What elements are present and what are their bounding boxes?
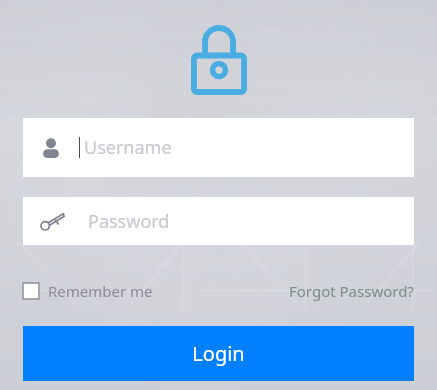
button[interactable]: Username xyxy=(23,118,414,177)
staticText: Password xyxy=(88,209,170,234)
button[interactable]: Login xyxy=(23,326,414,381)
button[interactable]: Forgot Password? xyxy=(289,281,414,301)
staticText: Remember me xyxy=(48,281,153,301)
staticText: Login xyxy=(192,340,245,367)
other: Secure login xyxy=(191,25,247,95)
staticText: Username xyxy=(84,135,172,160)
button[interactable]: Password xyxy=(23,197,414,245)
button[interactable]: Remember me xyxy=(23,281,153,301)
